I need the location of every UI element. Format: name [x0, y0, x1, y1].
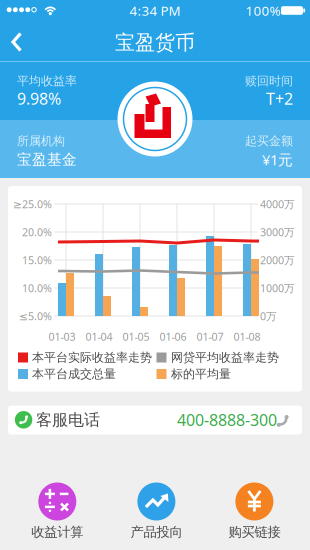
staticText: 宝盈基金 [17, 150, 77, 168]
staticText: 平均收益率 [17, 74, 77, 88]
staticText: 3000万 [260, 225, 295, 239]
staticText: 本平台实际收益率走势 [32, 350, 152, 365]
staticText: 01-05 [122, 329, 149, 344]
staticText: 4:34 PM [129, 2, 180, 19]
staticText: 01-07 [196, 329, 223, 344]
staticText: 购买链接 [228, 524, 280, 540]
button[interactable]: Back [0, 27, 34, 57]
staticText: 客服电话 [36, 410, 100, 430]
staticText: 9.98% [17, 88, 61, 109]
staticText: 15.0% [22, 253, 52, 267]
staticText: 2000万 [260, 253, 295, 267]
staticText: 网贷平均收益率走势 [171, 350, 279, 365]
staticText: 产品投向 [130, 524, 182, 540]
staticText: ≥25.0% [13, 197, 52, 211]
staticText: 所属机构 [17, 134, 65, 148]
staticText: 1000万 [260, 281, 295, 295]
staticText: 起买金额 [245, 134, 293, 148]
staticText: T+2 [266, 88, 293, 109]
staticText: 4000万 [260, 197, 295, 211]
staticText: 赎回时间 [245, 74, 293, 88]
staticText: ≤5.0% [19, 309, 52, 323]
button[interactable]: 客服电话 [8, 405, 302, 434]
button[interactable]: 购买链接 [221, 476, 287, 548]
staticText: 100% [245, 2, 280, 19]
staticText: 0万 [260, 309, 277, 323]
staticText: 10.0% [22, 281, 52, 295]
staticText: 01-03 [48, 329, 75, 344]
button[interactable]: 收益计算 [24, 476, 90, 548]
staticText: 宝盈货币 [115, 30, 195, 55]
staticText: 01-08 [233, 329, 260, 344]
staticText: 本平台成交总量 [32, 367, 116, 381]
staticText: ¥1元 [262, 150, 293, 169]
staticText: 01-04 [85, 329, 112, 344]
button[interactable]: 产品投向 [123, 476, 189, 548]
staticText: 收益计算 [31, 524, 83, 540]
staticText: 400-8888-300 [177, 409, 277, 430]
staticText: 20.0% [22, 225, 52, 239]
staticText: 01-06 [159, 329, 186, 344]
staticText: 标的平均量 [171, 367, 231, 381]
